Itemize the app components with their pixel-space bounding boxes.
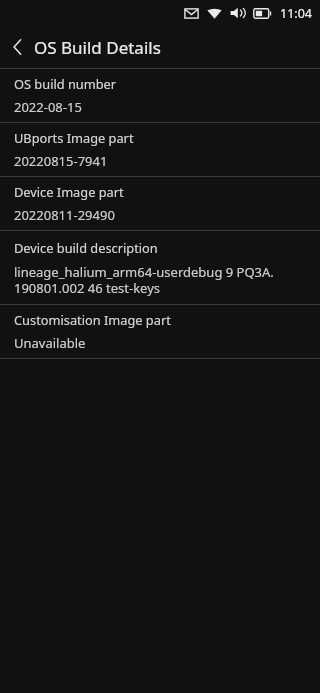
staticText: 20220815-7941 [14, 152, 108, 170]
button[interactable]: Back [0, 26, 34, 68]
button[interactable]: Device Image part [0, 177, 320, 230]
button[interactable]: OS build number [0, 69, 320, 122]
staticText: OS build number [14, 75, 117, 92]
staticText: Device Image part [14, 183, 124, 200]
staticText: UBports Image part [14, 129, 134, 146]
button[interactable]: Device build description [0, 231, 320, 304]
staticText: Unavailable [14, 334, 86, 352]
staticText: Device build description [14, 239, 158, 256]
staticText: lineage_halium_arm64-userdebug 9 PQ3A. 1… [14, 263, 274, 296]
staticText: 11:04 [280, 5, 312, 22]
staticText: 20220811-29490 [14, 206, 115, 224]
staticText: 2022-08-15 [14, 98, 82, 116]
staticText: Customisation Image part [14, 311, 171, 328]
staticText: OS Build Details [34, 36, 161, 59]
button[interactable]: Customisation Image part [0, 305, 320, 358]
button[interactable]: UBports Image part [0, 123, 320, 176]
